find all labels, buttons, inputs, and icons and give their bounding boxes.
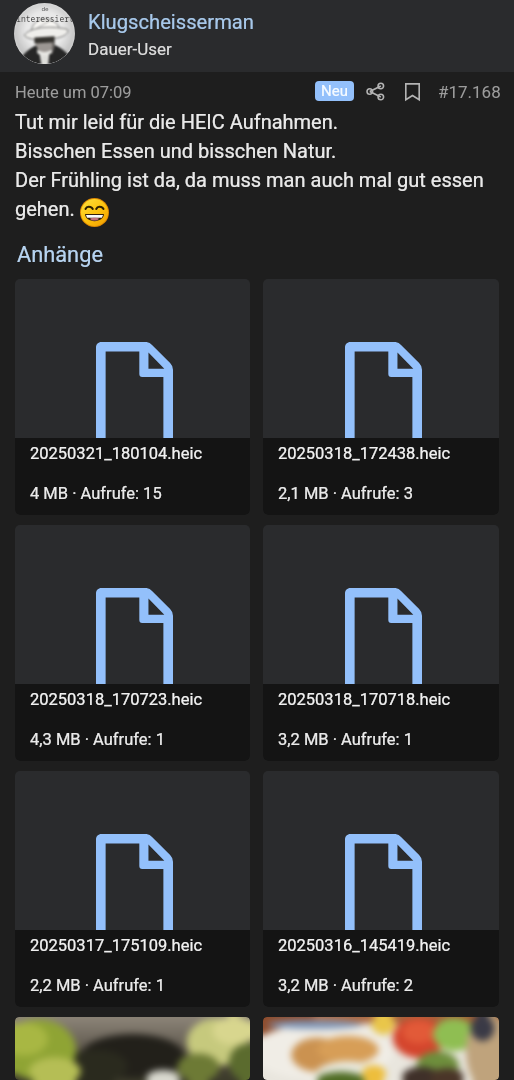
button[interactable] (15, 1017, 250, 1080)
staticText: Tut mir leid für die HEIC Aufnahmen. Bis… (15, 106, 484, 222)
button[interactable]: Neu (315, 81, 354, 101)
button[interactable]: 20250316_145419.heic (263, 771, 499, 1007)
button[interactable]: #17.168 (438, 82, 501, 102)
staticText: Heute um 07:09 (15, 83, 132, 102)
staticText: 2,2 MB · Aufrufe: 1 (30, 976, 165, 995)
staticText: 20250318_170723.heic (30, 690, 203, 709)
staticText: 3,2 MB · Aufrufe: 2 (278, 976, 413, 995)
button[interactable]: Teilen (362, 78, 388, 104)
staticText: Dauer-User (88, 39, 172, 59)
staticText: 2,1 MB · Aufrufe: 3 (278, 484, 413, 503)
staticText: 20250321_180104.heic (30, 444, 203, 463)
button[interactable] (263, 1017, 499, 1080)
staticText: interessiert (16, 13, 74, 24)
staticText: 20250317_175109.heic (30, 936, 203, 955)
button[interactable]: 20250321_180104.heic (15, 279, 250, 515)
staticText: de (41, 5, 49, 13)
staticText: Neu (321, 82, 348, 100)
button[interactable]: de (0, 0, 514, 72)
staticText: 20250318_172438.heic (278, 444, 451, 463)
button[interactable]: Anhänge (17, 242, 103, 268)
staticText: 4,3 MB · Aufrufe: 1 (30, 730, 165, 749)
staticText: 20250316_145419.heic (278, 936, 451, 955)
button[interactable]: 20250318_170718.heic (263, 525, 499, 761)
button[interactable]: 20250317_175109.heic (15, 771, 250, 1007)
button[interactable]: 20250318_170723.heic (15, 525, 250, 761)
staticText: 3,2 MB · Aufrufe: 1 (278, 730, 413, 749)
button[interactable]: Lesezeichen (399, 78, 425, 104)
staticText: 20250318_170718.heic (278, 690, 451, 709)
button[interactable]: 20250318_172438.heic (263, 279, 499, 515)
staticText: Klugscheisserman (88, 10, 254, 34)
staticText: 4 MB · Aufrufe: 15 (30, 484, 162, 503)
